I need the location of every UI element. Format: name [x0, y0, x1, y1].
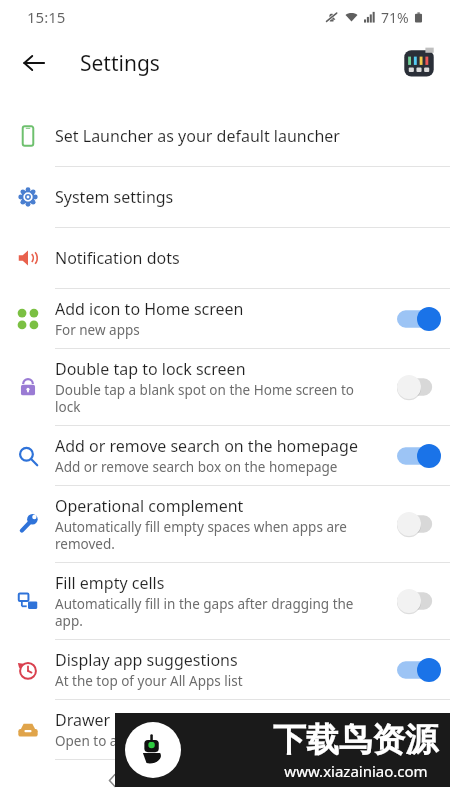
button[interactable]: Operational complement [0, 486, 450, 562]
staticText: At the top of your All Apps list [55, 672, 243, 690]
staticText: Settings [80, 49, 160, 78]
button[interactable]: Add icon to Home screen [0, 289, 450, 348]
staticText: Automatically fill in the gaps after dra… [55, 595, 382, 630]
button[interactable]: Back [96, 764, 128, 796]
button[interactable]: Off [397, 718, 441, 742]
staticText: Automatically fill empty spaces when app… [55, 518, 382, 553]
button[interactable]: Display app suggestions [0, 640, 450, 699]
button[interactable]: On [397, 658, 441, 682]
staticText: Add or remove search box on the homepage [55, 458, 338, 476]
staticText: System settings [55, 186, 174, 208]
staticText: Drawer settings [55, 709, 175, 731]
staticText: Add icon to Home screen [55, 298, 244, 320]
staticText: 下载鸟资源 [273, 719, 438, 761]
button[interactable]: Notification dots [0, 228, 450, 288]
button[interactable]: Off [397, 589, 441, 613]
staticText: Set Launcher as your default launcher [55, 125, 340, 147]
staticText: www.xiazainiao.com [284, 761, 428, 781]
button[interactable]: Back [12, 41, 56, 85]
button[interactable]: Double tap to lock screen [0, 349, 450, 425]
button[interactable]: System settings [0, 167, 450, 227]
button[interactable]: On [397, 307, 441, 331]
staticText: Notification dots [55, 247, 180, 269]
button[interactable]: On [397, 444, 441, 468]
staticText: Add or remove search on the homepage [55, 435, 358, 457]
button[interactable]: Set Launcher as your default launcher [0, 106, 450, 166]
staticText: Select wallpaper [55, 769, 178, 791]
staticText: Fill empty cells [55, 572, 165, 594]
staticText: Operational complement [55, 495, 244, 517]
button[interactable]: Fill empty cells [0, 563, 450, 639]
staticText: Open to add all apps to your desktop [55, 732, 290, 750]
staticText: Display app suggestions [55, 649, 238, 671]
button[interactable]: Off [397, 512, 441, 536]
staticText: 15:15 [27, 7, 66, 27]
button[interactable]: Drawer settings [0, 700, 450, 759]
staticText: Double tap a blank spot on the Home scre… [55, 381, 382, 416]
button[interactable]: App icon [402, 46, 436, 80]
button[interactable]: Add or remove search on the homepage [0, 426, 450, 485]
staticText: Double tap to lock screen [55, 358, 246, 380]
staticText: 71% [381, 8, 409, 27]
button[interactable]: Select wallpaper [0, 760, 450, 800]
staticText: For new apps [55, 321, 140, 339]
button[interactable]: Off [397, 375, 441, 399]
